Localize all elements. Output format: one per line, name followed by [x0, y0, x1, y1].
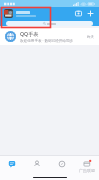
button[interactable]: Contacts	[24, 156, 49, 171]
button[interactable]: Add	[86, 9, 95, 18]
staticText: 昨天	[87, 35, 94, 39]
button[interactable]: Discover	[49, 156, 74, 171]
button[interactable]: Messages	[0, 156, 24, 171]
staticText: 广告联盟	[79, 168, 95, 173]
button[interactable]: Profile	[74, 156, 99, 171]
button[interactable]: QQ手表	[0, 28, 99, 45]
button[interactable]	[16, 11, 74, 17]
button[interactable]: Profile avatar	[4, 9, 13, 18]
staticText: 欢迎使用手表 · 数据已经开始同步	[20, 38, 74, 43]
button[interactable]	[6, 21, 93, 26]
button[interactable]: Scan	[74, 9, 83, 18]
staticText: QQ手表	[20, 30, 39, 37]
